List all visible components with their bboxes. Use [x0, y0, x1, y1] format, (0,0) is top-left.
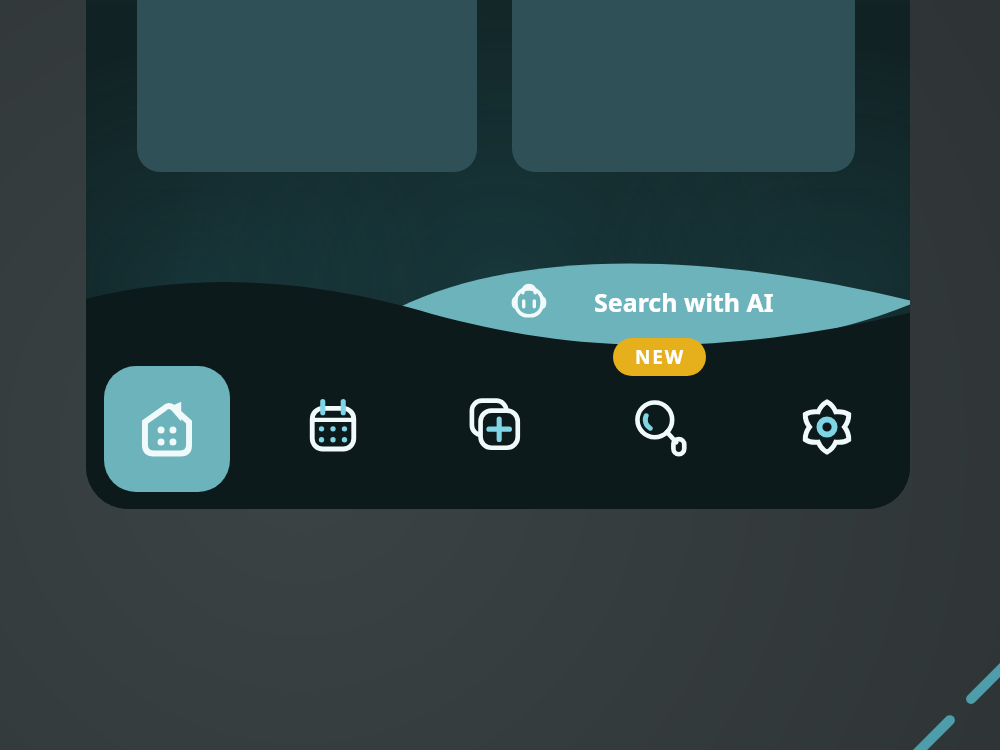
button[interactable]: Create new	[456, 386, 538, 468]
button[interactable]: Settings	[784, 384, 870, 470]
button[interactable]: Calendar	[292, 386, 374, 468]
button[interactable]: NEW	[613, 338, 706, 376]
staticText: NEW	[635, 344, 685, 370]
button[interactable]: Search with AI	[506, 278, 796, 326]
button[interactable]: Home	[104, 366, 230, 492]
button[interactable]: Search	[620, 386, 702, 468]
staticText: Search with AI	[594, 285, 774, 319]
